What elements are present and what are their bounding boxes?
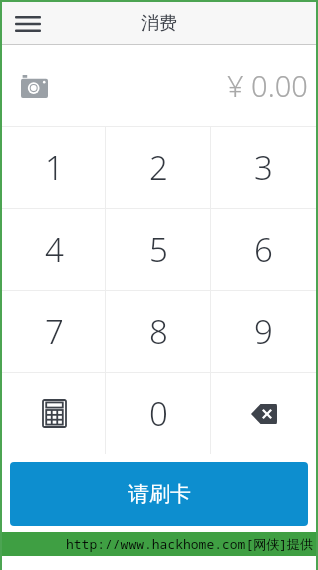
button[interactable]: Delete bbox=[211, 373, 316, 454]
button[interactable]: 0 bbox=[106, 373, 211, 454]
button[interactable]: 3 bbox=[211, 127, 316, 208]
button[interactable]: 7 bbox=[2, 291, 106, 372]
staticText: http://www.hackhome.com[网侠]提供 bbox=[66, 535, 314, 553]
staticText: ¥ 0.00 bbox=[227, 66, 308, 105]
button[interactable]: 1 bbox=[2, 127, 106, 208]
staticText: 2 bbox=[149, 145, 168, 190]
staticText: 1 bbox=[45, 145, 64, 190]
button[interactable]: Menu bbox=[8, 4, 48, 44]
button[interactable]: 请刷卡 bbox=[10, 462, 308, 526]
button[interactable]: 4 bbox=[2, 209, 106, 290]
staticText: 3 bbox=[254, 145, 273, 190]
staticText: 6 bbox=[254, 227, 273, 272]
staticText: 0 bbox=[149, 391, 168, 436]
staticText: 消费 bbox=[141, 12, 177, 35]
staticText: 8 bbox=[149, 309, 168, 354]
staticText: 7 bbox=[45, 309, 64, 354]
button[interactable]: 8 bbox=[106, 291, 211, 372]
button[interactable]: 5 bbox=[106, 209, 211, 290]
button[interactable]: Calculator bbox=[2, 373, 106, 454]
staticText: 9 bbox=[254, 309, 273, 354]
button[interactable]: 9 bbox=[211, 291, 316, 372]
button[interactable]: 2 bbox=[106, 127, 211, 208]
staticText: 5 bbox=[149, 227, 168, 272]
staticText: 4 bbox=[45, 227, 64, 272]
button[interactable]: 6 bbox=[211, 209, 316, 290]
button[interactable]: Camera bbox=[14, 66, 54, 106]
staticText: 请刷卡 bbox=[128, 481, 191, 507]
